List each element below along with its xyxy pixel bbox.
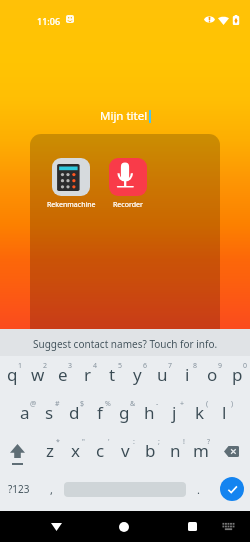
staticText: Suggest contact names? Touch for info.	[33, 337, 218, 351]
staticText: q	[7, 363, 18, 386]
staticText: f	[97, 401, 103, 424]
staticText: Recorder	[113, 200, 143, 210]
button[interactable]: m	[188, 432, 213, 470]
button[interactable]: w	[25, 356, 50, 394]
staticText: s	[45, 401, 54, 424]
staticText: u	[157, 363, 168, 386]
staticText: :	[133, 437, 135, 447]
staticText: !	[183, 437, 185, 447]
button[interactable]: u	[150, 356, 175, 394]
button[interactable]: .	[186, 470, 210, 508]
staticText: 5	[118, 361, 123, 371]
staticText: $	[80, 399, 85, 409]
staticText: p	[232, 363, 243, 386]
staticText: a	[20, 401, 30, 424]
button[interactable]: Backspace	[213, 432, 250, 470]
button[interactable]: Switch keyboard	[217, 511, 239, 542]
staticText: g	[119, 401, 130, 424]
button[interactable]: z	[37, 432, 63, 470]
staticText: 7	[168, 361, 173, 371]
staticText: k	[195, 401, 205, 424]
staticText: n	[170, 439, 181, 462]
button[interactable]: v	[113, 432, 138, 470]
button[interactable]: x	[63, 432, 88, 470]
button[interactable]: o	[200, 356, 225, 394]
staticText: w	[31, 363, 45, 386]
staticText: &	[130, 399, 136, 409]
staticText: .	[197, 482, 200, 497]
staticText: b	[145, 439, 156, 462]
button[interactable]: ?123	[0, 470, 38, 508]
staticText: ?123	[8, 482, 30, 496]
staticText: -	[156, 399, 159, 409]
button[interactable]: d	[62, 394, 87, 432]
staticText: 9	[218, 361, 223, 371]
button[interactable]	[30, 134, 220, 329]
staticText: 3	[68, 361, 73, 371]
staticText: Rekenmachine	[47, 200, 96, 210]
staticText: 11:06	[37, 15, 61, 27]
staticText: (	[206, 399, 209, 409]
staticText: 6	[143, 361, 148, 371]
button[interactable]: t	[100, 356, 125, 394]
staticText: z	[46, 439, 54, 462]
button[interactable]: n	[163, 432, 188, 470]
staticText: c	[96, 439, 105, 462]
staticText: 0	[243, 361, 248, 371]
staticText: m	[193, 439, 209, 462]
button[interactable]: Enter	[220, 477, 244, 501]
staticText: ;	[158, 437, 160, 447]
button[interactable]: k	[187, 394, 212, 432]
button[interactable]: ,	[38, 470, 64, 508]
staticText: )	[231, 399, 234, 409]
staticText: y	[133, 363, 142, 386]
button[interactable]: Recent apps	[177, 511, 207, 542]
button[interactable]: c	[88, 432, 113, 470]
staticText: d	[69, 401, 80, 424]
staticText: l	[222, 401, 227, 424]
button[interactable]: y	[125, 356, 150, 394]
button[interactable]: s	[37, 394, 62, 432]
staticText: 8	[193, 361, 198, 371]
staticText: "	[82, 437, 85, 447]
staticText: #	[55, 399, 60, 409]
button[interactable]: Mijn titel	[100, 108, 148, 124]
button[interactable]: q	[0, 356, 25, 394]
staticText: h	[144, 401, 155, 424]
staticText: x	[71, 439, 80, 462]
staticText: t	[109, 363, 116, 386]
button[interactable]: Recorder	[109, 158, 147, 196]
button[interactable]: g	[112, 394, 137, 432]
staticText: 1	[18, 361, 23, 371]
staticText: e	[58, 363, 68, 386]
staticText: o	[207, 363, 218, 386]
staticText: '	[108, 437, 110, 447]
button[interactable]: Back	[41, 511, 71, 542]
button[interactable]: Home	[109, 511, 139, 542]
button[interactable]: h	[137, 394, 162, 432]
button[interactable]: i	[175, 356, 200, 394]
staticText: *	[56, 437, 60, 447]
staticText: v	[121, 439, 130, 462]
staticText: %	[105, 399, 111, 409]
staticText: 2	[43, 361, 48, 371]
button[interactable]: b	[138, 432, 163, 470]
button[interactable]: j	[162, 394, 187, 432]
button[interactable]: f	[87, 394, 112, 432]
staticText: r	[84, 363, 92, 386]
button[interactable]: Rekenmachine	[52, 158, 90, 196]
staticText: 4	[93, 361, 98, 371]
button[interactable]: Suggest contact names? Touch for info.	[0, 329, 250, 356]
staticText: @	[30, 399, 37, 409]
button[interactable]: Shift	[0, 432, 37, 470]
button[interactable]: l	[212, 394, 237, 432]
button[interactable]: a	[13, 394, 37, 432]
staticText: ?	[207, 437, 211, 447]
button[interactable]: e	[50, 356, 75, 394]
staticText: ,	[50, 482, 53, 497]
staticText: j	[172, 401, 177, 424]
button[interactable]: r	[75, 356, 100, 394]
button[interactable]: p	[225, 356, 250, 394]
staticText: +	[180, 399, 185, 409]
